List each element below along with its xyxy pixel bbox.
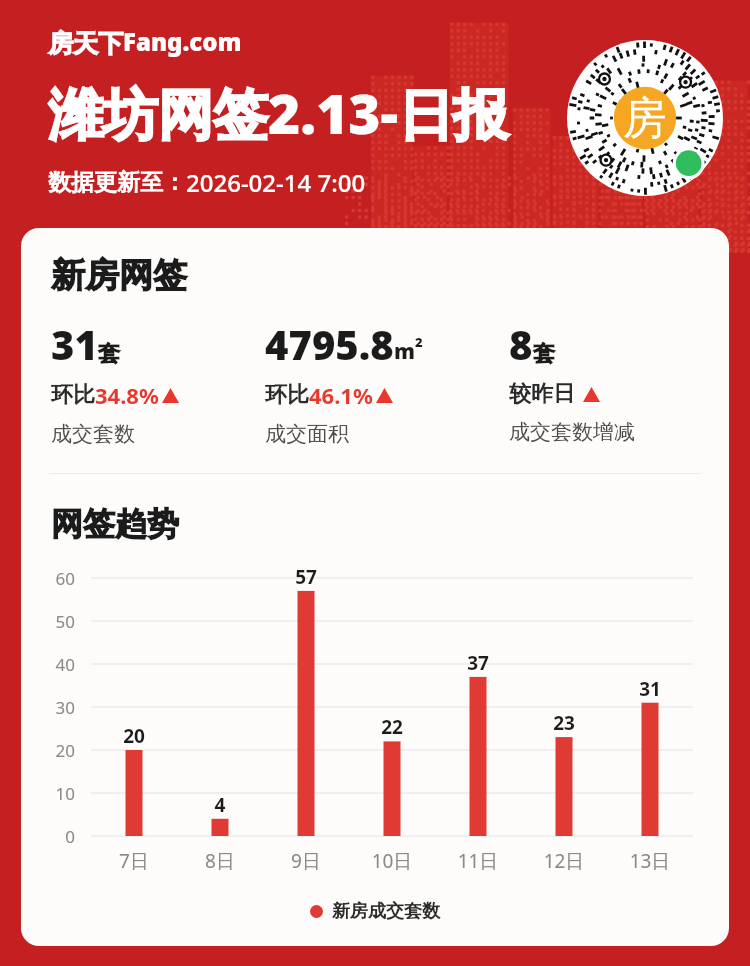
staticText: 30 bbox=[25, 696, 75, 719]
button[interactable]: 新房成交套数 bbox=[21, 900, 729, 923]
staticText: 套 bbox=[533, 340, 555, 368]
staticText: m bbox=[394, 337, 415, 366]
staticText: 20 bbox=[25, 739, 75, 762]
staticText: 套 bbox=[98, 340, 120, 368]
staticText: 9日 bbox=[276, 848, 336, 874]
staticText: 网签趋势 bbox=[51, 504, 179, 544]
staticText: 4 bbox=[190, 792, 250, 818]
staticText: 40 bbox=[25, 653, 75, 676]
staticText: 22 bbox=[362, 714, 422, 740]
staticText: 11日 bbox=[448, 848, 508, 874]
staticText: 2 bbox=[415, 333, 423, 351]
staticText: 23 bbox=[534, 710, 594, 736]
staticText: 34.8% bbox=[95, 380, 159, 410]
staticText: 8日 bbox=[190, 848, 250, 874]
staticText: 房天下 bbox=[48, 28, 123, 59]
staticText: Fang.com bbox=[123, 25, 242, 58]
staticText: 较昨日 bbox=[509, 380, 575, 408]
staticText: 8 bbox=[509, 317, 533, 371]
button[interactable]: 4795.8 bbox=[265, 317, 509, 447]
staticText: 20 bbox=[104, 723, 164, 749]
staticText: 房 bbox=[623, 91, 667, 146]
staticText: 57 bbox=[276, 564, 336, 590]
staticText: 数据更新至： bbox=[48, 168, 186, 197]
staticText: 环比 bbox=[51, 381, 95, 409]
staticText: 2026-02-14 7:00 bbox=[186, 166, 366, 199]
staticText: 12日 bbox=[534, 848, 594, 874]
button[interactable]: 扫码查看小程序 bbox=[567, 40, 723, 196]
staticText: 31 bbox=[51, 317, 98, 371]
staticText: 新房网签 bbox=[51, 254, 187, 297]
button[interactable]: 31 bbox=[51, 317, 265, 447]
staticText: 46.1% bbox=[309, 380, 373, 410]
staticText: 成交套数增减 bbox=[509, 419, 635, 445]
staticText: 37 bbox=[448, 650, 508, 676]
staticText: 环比 bbox=[265, 381, 309, 409]
staticText: 60 bbox=[25, 567, 75, 590]
staticText: 10 bbox=[25, 782, 75, 805]
staticText: 31 bbox=[620, 676, 680, 702]
staticText: 潍坊网签2.13-日报 bbox=[48, 75, 509, 150]
staticText: 新房成交套数 bbox=[332, 900, 440, 923]
button[interactable]: 8 bbox=[509, 317, 719, 445]
staticText: 50 bbox=[25, 610, 75, 633]
staticText: 成交面积 bbox=[265, 421, 349, 447]
staticText: 10日 bbox=[362, 848, 422, 874]
staticText: 4795.8 bbox=[265, 317, 394, 371]
staticText: 0 bbox=[25, 825, 75, 848]
staticText: 成交套数 bbox=[51, 421, 135, 447]
staticText: 13日 bbox=[620, 848, 680, 874]
staticText: 7日 bbox=[104, 848, 164, 874]
